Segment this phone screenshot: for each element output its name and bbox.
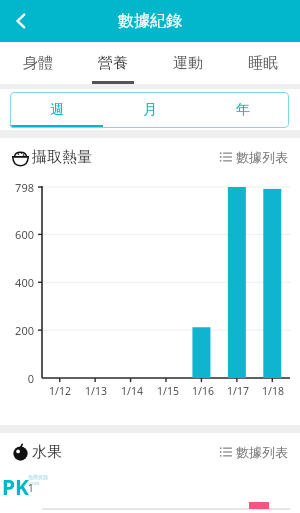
button[interactable]: 身體	[0, 42, 75, 84]
staticText: PK	[2, 473, 29, 502]
staticText: 600	[0, 227, 34, 242]
button[interactable]: 月	[103, 92, 196, 128]
staticText: 數據列表	[236, 149, 288, 165]
staticText: 月	[143, 101, 157, 119]
staticText: 水果	[32, 443, 62, 462]
staticText: 1/12	[49, 384, 71, 398]
button[interactable]: 週	[10, 92, 103, 128]
staticText: 攝取熱量	[32, 148, 92, 167]
staticText: 1/15	[157, 384, 179, 398]
staticText: 1/13	[85, 384, 107, 398]
button[interactable]: Back	[0, 0, 42, 42]
staticText: 1	[28, 481, 34, 495]
staticText: 0	[0, 371, 34, 386]
staticText: 運動	[173, 54, 203, 73]
button[interactable]: 睡眠	[225, 42, 300, 84]
staticText: 1/18	[262, 384, 284, 398]
staticText: 數據紀錄	[118, 11, 182, 31]
button[interactable]: 數據列表	[220, 149, 288, 165]
staticText: 免費資源 .com	[28, 474, 48, 486]
button[interactable]: 數據列表	[220, 444, 288, 460]
staticText: 1/14	[121, 384, 143, 398]
staticText: 1/16	[192, 384, 214, 398]
staticText: 營養	[98, 54, 128, 73]
staticText: 週	[50, 101, 64, 119]
staticText: 數據列表	[236, 444, 288, 460]
staticText: 200	[0, 323, 34, 338]
staticText: 798	[0, 180, 34, 195]
button[interactable]: 年	[196, 92, 289, 128]
staticText: 400	[0, 275, 34, 290]
staticText: 身體	[23, 54, 53, 73]
staticText: 1/17	[227, 384, 249, 398]
button[interactable]: 運動	[150, 42, 225, 84]
staticText: 年	[236, 101, 250, 119]
staticText: 睡眠	[248, 54, 278, 73]
button[interactable]: 營養	[75, 42, 150, 84]
